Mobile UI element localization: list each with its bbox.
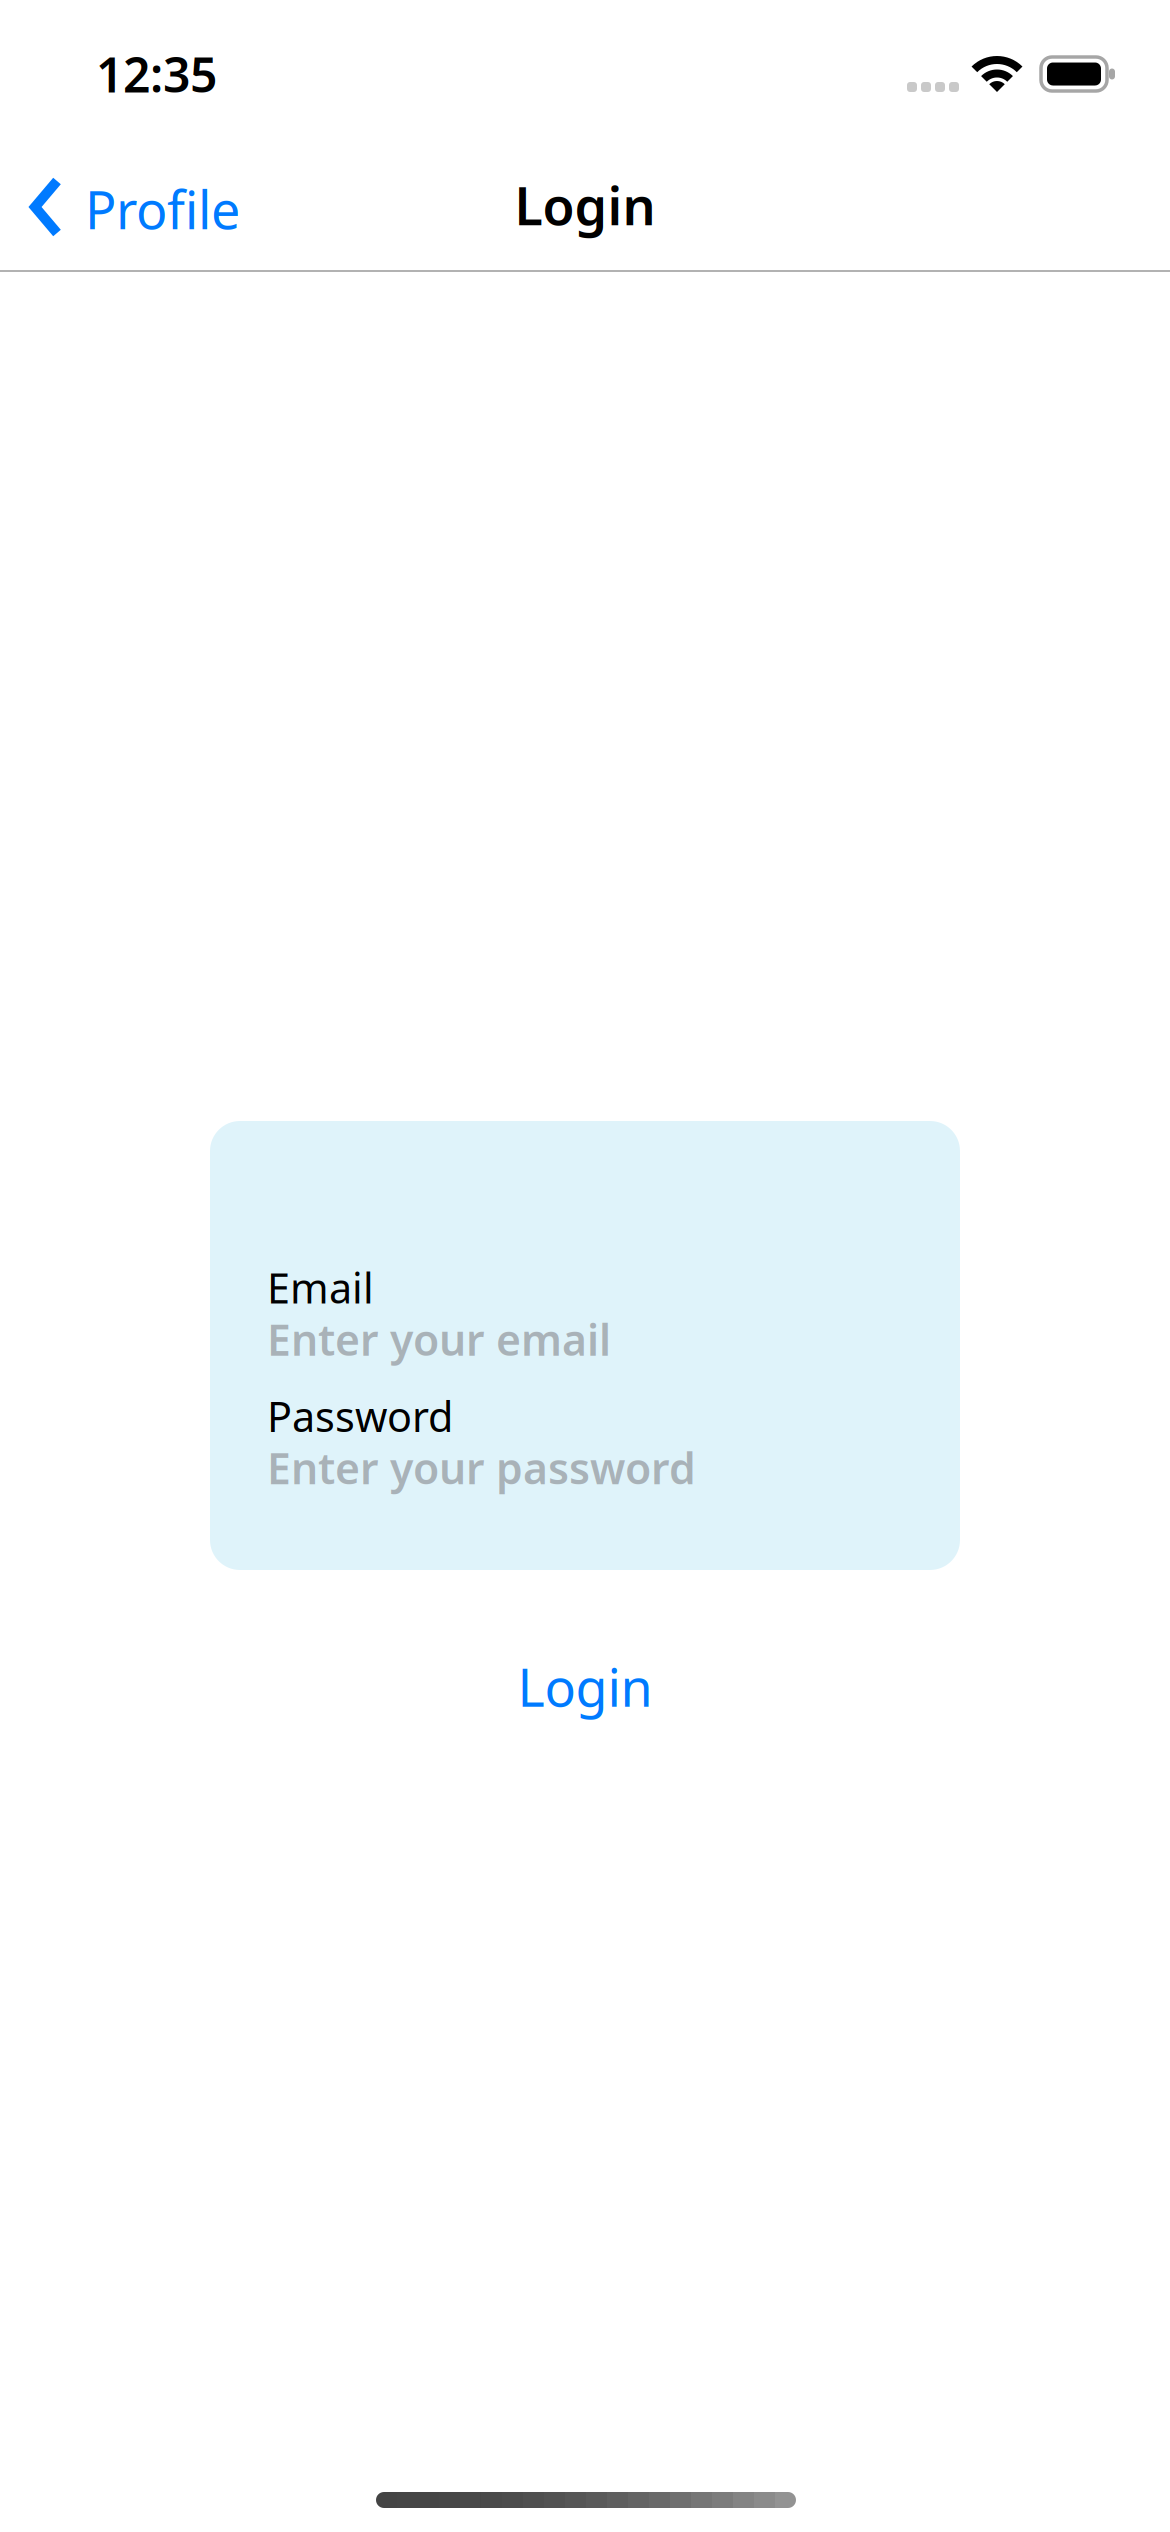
staticText: Login — [517, 1652, 652, 1721]
staticText: Enter your password — [267, 1439, 696, 1496]
staticText: Email — [267, 1260, 374, 1315]
secureTextField[interactable]: Enter your password — [267, 1439, 696, 1496]
textField[interactable]: Enter your email — [267, 1311, 611, 1368]
button[interactable]: Login — [517, 1652, 652, 1721]
staticText: 12:35 — [96, 42, 217, 106]
staticText: Enter your email — [267, 1311, 611, 1368]
staticText: Password — [267, 1388, 453, 1443]
button[interactable]: Back to Profile — [0, 174, 240, 244]
staticText: Login — [514, 170, 655, 240]
staticText: Profile — [85, 174, 240, 244]
